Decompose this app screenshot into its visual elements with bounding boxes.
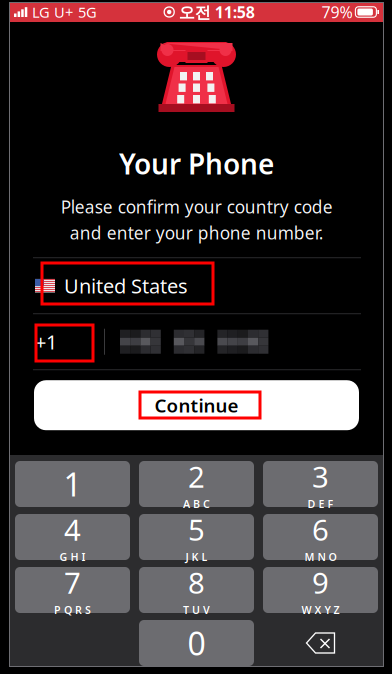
staticText: M N O — [304, 550, 336, 564]
staticText: United States — [64, 272, 188, 299]
staticText: P Q R S — [54, 603, 91, 617]
button[interactable]: United States — [33, 258, 361, 313]
staticText: 8 — [188, 563, 205, 602]
staticText: 9 — [312, 563, 329, 602]
button[interactable]: 2 — [139, 461, 254, 507]
button[interactable]: Continue — [34, 380, 359, 430]
button[interactable]: 0 — [139, 620, 254, 666]
button[interactable]: 1 — [15, 461, 130, 507]
staticText: 1 — [63, 463, 81, 505]
staticText: J K L — [185, 550, 207, 564]
staticText: 5 — [188, 510, 205, 549]
staticText: Please confirm your country code — [60, 195, 332, 218]
staticText: 3 — [312, 457, 329, 496]
staticText: 6 — [312, 510, 329, 549]
button[interactable]: 8 — [139, 567, 254, 613]
button[interactable]: 3 — [263, 461, 378, 507]
button[interactable]: 7 — [15, 567, 130, 613]
staticText: W X Y Z — [301, 603, 339, 617]
staticText: 7 — [64, 563, 81, 602]
button[interactable]: 6 — [263, 514, 378, 560]
staticText: 0 — [187, 622, 205, 664]
staticText: 2 — [188, 457, 205, 496]
staticText: +1 — [35, 328, 57, 355]
staticText: Continue — [154, 393, 238, 418]
button[interactable]: 4 — [15, 514, 130, 560]
button[interactable]: 5 — [139, 514, 254, 560]
staticText: 4 — [64, 510, 81, 549]
staticText: 오전 11:58 — [179, 1, 255, 23]
staticText: A B C — [183, 497, 210, 511]
staticText: 79% — [321, 1, 352, 23]
staticText: and enter your phone number. — [69, 221, 323, 244]
button[interactable]: Delete — [263, 620, 378, 666]
button[interactable]: 9 — [263, 567, 378, 613]
staticText: 5G — [78, 2, 97, 22]
staticText: Your Phone — [119, 145, 274, 182]
staticText: T U V — [183, 603, 210, 617]
staticText: G H I — [59, 550, 85, 564]
staticText: LG U+ — [32, 2, 73, 22]
staticText: D E F — [307, 497, 333, 511]
